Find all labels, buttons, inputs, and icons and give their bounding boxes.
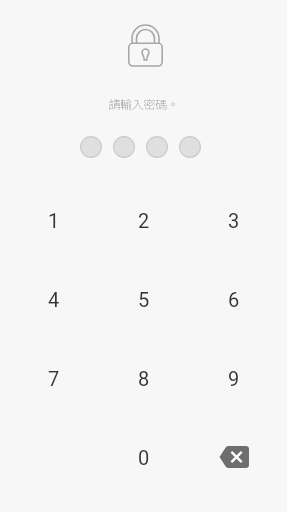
button[interactable]: 7 (8, 339, 99, 418)
button[interactable]: 0 (99, 418, 189, 497)
staticText: 2 (138, 209, 150, 232)
staticText: 8 (138, 367, 150, 390)
staticText: 9 (228, 367, 240, 390)
staticText: 5 (138, 288, 150, 311)
staticText: 請輸入密碼。 (108, 95, 179, 112)
button[interactable]: 6 (189, 260, 279, 339)
staticText: 4 (48, 288, 60, 311)
staticText: 0 (138, 446, 150, 469)
staticText: 6 (228, 288, 240, 311)
button[interactable]: 9 (189, 339, 279, 418)
button[interactable]: 5 (99, 260, 189, 339)
button[interactable]: 3 (189, 181, 279, 260)
staticText: 7 (48, 367, 60, 390)
button[interactable]: 1 (8, 181, 99, 260)
staticText: 1 (48, 209, 60, 232)
button[interactable]: 8 (99, 339, 189, 418)
staticText: 3 (228, 209, 240, 232)
button[interactable]: 2 (99, 181, 189, 260)
button[interactable]: Delete (189, 418, 279, 497)
button[interactable]: 4 (8, 260, 99, 339)
